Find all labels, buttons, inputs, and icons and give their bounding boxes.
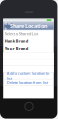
staticText: Back bbox=[4, 20, 12, 31]
staticText: Select a Shared List bbox=[5, 31, 38, 36]
staticText: Your Brand bbox=[5, 46, 29, 51]
button[interactable]: Delete location from list bbox=[3, 79, 54, 85]
button[interactable]: Hank Brand bbox=[3, 37, 54, 45]
button[interactable]: Your Brand bbox=[3, 45, 54, 52]
staticText: Delete location from list bbox=[7, 80, 48, 85]
staticText: Add a custom location to list bbox=[7, 70, 49, 81]
button[interactable]: Back bbox=[4, 23, 13, 28]
button[interactable]: Add a custom location to list bbox=[3, 73, 54, 79]
staticText: Hank Brand bbox=[5, 38, 29, 43]
staticText: Share Location bbox=[10, 22, 47, 29]
